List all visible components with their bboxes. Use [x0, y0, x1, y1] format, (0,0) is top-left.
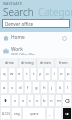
button[interactable]: driving	[19, 58, 36, 67]
staticText: r	[26, 71, 28, 77]
button[interactable]: r	[24, 68, 29, 80]
button[interactable]: l	[65, 82, 71, 93]
staticText: s	[11, 85, 14, 91]
button[interactable]: n	[49, 95, 54, 106]
staticText: NAVIGATE	[3, 1, 23, 6]
other: Recent	[62, 36, 67, 41]
button[interactable]: g	[33, 82, 39, 93]
button[interactable]: w	[9, 68, 15, 80]
staticText: k	[59, 85, 62, 91]
staticText: f	[27, 85, 29, 91]
button[interactable]: v	[35, 95, 40, 106]
staticText: p	[67, 71, 70, 77]
button[interactable]: Denver office	[3, 20, 69, 27]
staticText: w	[10, 71, 14, 77]
staticText: drive	[5, 60, 14, 65]
staticText: Work	[11, 46, 23, 53]
staticText: o	[60, 71, 63, 77]
staticText: d	[19, 85, 22, 91]
button[interactable]: Work	[0, 46, 72, 55]
staticText: i	[54, 71, 56, 77]
staticText: j	[51, 85, 53, 91]
staticText: space	[30, 112, 39, 116]
button[interactable]: .	[55, 108, 61, 119]
staticText: t	[33, 71, 35, 77]
button[interactable]: t	[31, 68, 36, 80]
staticText: &123	[2, 112, 10, 116]
staticText: l	[67, 85, 69, 91]
staticText: Denver office	[5, 21, 34, 27]
button[interactable]: space	[23, 108, 45, 119]
staticText: from	[59, 60, 68, 65]
button[interactable]: Shift	[1, 95, 10, 106]
staticText: b	[43, 98, 46, 104]
staticText: m	[57, 98, 61, 104]
staticText: n	[50, 98, 53, 104]
button[interactable]: x	[20, 95, 26, 106]
button[interactable]: p	[66, 68, 71, 80]
staticText: z	[14, 98, 16, 104]
staticText: e	[18, 71, 21, 77]
button[interactable]: u	[45, 68, 50, 80]
staticText: Home	[11, 34, 25, 41]
staticText: c	[29, 98, 32, 104]
button[interactable]: z	[12, 95, 18, 106]
button[interactable]: Backspace	[63, 95, 71, 106]
button[interactable]: drive	[0, 58, 18, 67]
button[interactable]: k	[57, 82, 63, 93]
button[interactable]: Categories	[38, 5, 72, 19]
staticText: .	[57, 111, 59, 117]
staticText: drives	[40, 60, 51, 65]
button[interactable]: s	[9, 82, 15, 93]
staticText: y	[39, 71, 42, 77]
button[interactable]: i	[52, 68, 57, 80]
button[interactable]: Search	[3, 5, 34, 19]
button[interactable]: h	[41, 82, 47, 93]
button[interactable]: drives	[37, 58, 54, 67]
staticText: a	[3, 85, 6, 91]
staticText: ,	[49, 111, 51, 117]
button[interactable]: f	[25, 82, 31, 93]
staticText: q	[3, 71, 6, 77]
staticText: x	[22, 98, 25, 104]
button[interactable]: from	[55, 58, 72, 67]
button[interactable]: ,	[47, 108, 53, 119]
staticText: g	[35, 85, 38, 91]
button[interactable]: Home	[0, 33, 72, 42]
button[interactable]: d	[17, 82, 23, 93]
button[interactable]: q	[1, 68, 7, 80]
staticText: h	[43, 85, 46, 91]
button[interactable]: y	[38, 68, 43, 80]
button[interactable]: eng	[12, 108, 21, 119]
button[interactable]: b	[42, 95, 47, 106]
button[interactable]: o	[59, 68, 64, 80]
staticText: driving	[21, 60, 34, 65]
staticText: v	[36, 98, 39, 104]
button[interactable]: &123	[1, 108, 10, 119]
staticText: 9876 Office Way	[11, 53, 36, 55]
staticText: u	[46, 71, 49, 77]
button[interactable]: m	[56, 95, 61, 106]
staticText: eng	[14, 112, 20, 116]
button[interactable]: Enter	[63, 108, 71, 119]
button[interactable]: a	[1, 82, 7, 93]
button[interactable]: e	[17, 68, 22, 80]
button[interactable]: j	[49, 82, 55, 93]
button[interactable]: c	[28, 95, 33, 106]
